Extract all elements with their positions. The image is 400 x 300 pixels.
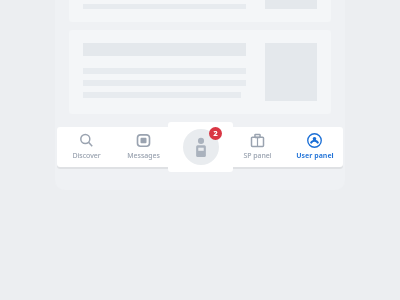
staticText: SP panel [243,151,272,161]
button[interactable]: Messages [115,127,172,167]
staticText: User panel [296,151,334,161]
button[interactable]: Discover [57,127,115,167]
button[interactable]: Profile [168,122,233,172]
staticText: 2 [213,129,218,139]
button[interactable]: SP panel [229,127,286,167]
staticText: Discover [72,151,101,161]
button[interactable]: User panel [286,127,343,167]
staticText: Messages [127,151,160,161]
